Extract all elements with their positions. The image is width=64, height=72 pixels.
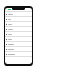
button[interactable]: [5, 47, 32, 51]
button[interactable]: [5, 27, 32, 31]
button[interactable]: [5, 22, 32, 26]
button[interactable]: App logo: [8, 9, 11, 10]
button[interactable]: [5, 12, 32, 16]
button[interactable]: [5, 52, 32, 56]
button[interactable]: [5, 37, 32, 41]
button[interactable]: [5, 17, 32, 21]
button[interactable]: [5, 32, 32, 36]
button[interactable]: [5, 42, 32, 46]
